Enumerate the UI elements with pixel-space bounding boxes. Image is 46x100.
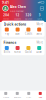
staticText: 9:41 (2, 0, 9, 5)
staticText: Loan (36, 50, 42, 54)
staticText: Finance (4, 40, 17, 45)
staticText: 284 (3, 13, 9, 17)
button[interactable]: Scan code (40, 7, 44, 10)
staticText: Cards (25, 32, 32, 35)
staticText: 12 (15, 13, 19, 17)
staticText: Alex Chen (10, 4, 26, 9)
button[interactable]: More (36, 41, 42, 44)
staticText: Cart (26, 95, 31, 99)
button[interactable]: Profile (2, 5, 8, 11)
button[interactable]: Bills (1, 46, 12, 54)
staticText: Home (3, 95, 9, 99)
button[interactable]: 12 (12, 13, 23, 20)
button[interactable]: 320 (23, 13, 34, 20)
button[interactable]: Me (34, 92, 46, 99)
button[interactable]: 284 (1, 13, 12, 20)
staticText: More (36, 22, 42, 26)
staticText: Pay (5, 32, 9, 35)
staticText: Balance (25, 17, 32, 20)
staticText: More (36, 41, 42, 44)
button[interactable]: More (36, 22, 42, 26)
button[interactable]: Home (0, 92, 11, 99)
staticText: Bills (4, 50, 10, 54)
staticText: 320 (25, 13, 31, 17)
staticText: Points (3, 17, 9, 20)
staticText: Me (39, 95, 42, 99)
staticText: Explore (14, 95, 21, 99)
button[interactable]: Send (34, 28, 45, 35)
staticText: Send (36, 32, 42, 35)
button[interactable]: 3 (34, 13, 45, 20)
staticText: Gold member (10, 9, 24, 12)
button[interactable]: Cart (23, 92, 34, 99)
staticText: Fund (14, 50, 21, 54)
button[interactable]: Loan (34, 46, 45, 54)
button[interactable]: Fund (12, 46, 23, 54)
staticText: 3 (39, 13, 41, 17)
staticText: Gold (25, 50, 32, 54)
staticText: Coupons (14, 17, 21, 20)
staticText: Quick actions (4, 22, 27, 26)
staticText: Cards (37, 17, 42, 20)
button[interactable]: Explore (11, 92, 23, 99)
button[interactable]: Scan (12, 28, 23, 35)
button[interactable]: Gold (23, 46, 34, 54)
staticText: Scan (15, 32, 20, 35)
button[interactable]: Cards (23, 28, 34, 35)
button[interactable]: Pay (1, 28, 12, 35)
